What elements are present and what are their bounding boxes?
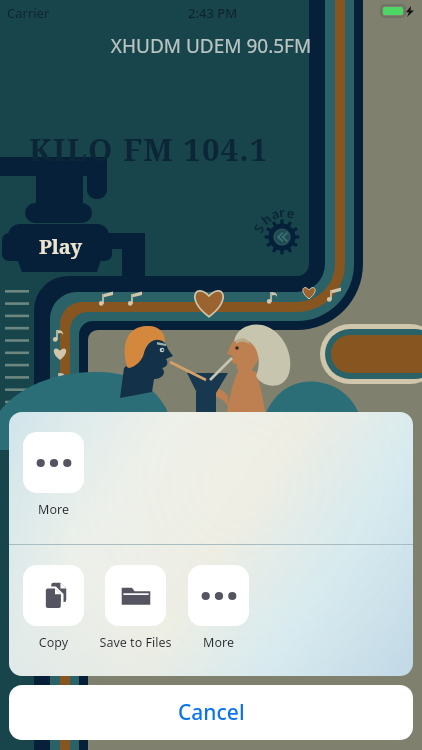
staticText: Save to Files (93, 634, 178, 651)
staticText: More (176, 634, 261, 651)
staticText: 2:43 PM (188, 4, 238, 22)
staticText: a (268, 204, 282, 224)
button[interactable]: More (11, 432, 96, 521)
staticText: KILO FM 104.1 (29, 128, 269, 170)
button[interactable]: Copy (11, 565, 96, 654)
button[interactable]: Save to Files (93, 565, 178, 654)
staticText: Cancel (178, 698, 245, 727)
staticText: S (249, 220, 269, 236)
button[interactable]: Cancel (9, 685, 413, 740)
staticText: More (11, 501, 96, 518)
staticText: h (257, 209, 276, 229)
button[interactable]: More (176, 565, 261, 654)
staticText: Copy (11, 634, 96, 651)
staticText: e (285, 203, 297, 223)
staticText: XHUDM UDEM 90.5FM (0, 33, 422, 59)
staticText: Carrier (7, 4, 50, 22)
staticText: Play (39, 233, 82, 260)
staticText: r (278, 203, 285, 221)
